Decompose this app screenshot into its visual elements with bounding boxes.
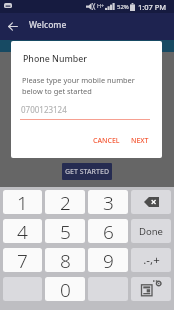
staticText: 9 bbox=[103, 248, 114, 272]
staticText: 8 bbox=[60, 248, 71, 272]
staticText: NEXT bbox=[131, 136, 149, 146]
staticText: 5 bbox=[60, 219, 71, 243]
staticText: CANCEL bbox=[93, 136, 120, 146]
button[interactable]: Backspace bbox=[131, 190, 171, 214]
button[interactable]: 9 bbox=[88, 248, 128, 272]
staticText: 7 bbox=[17, 248, 28, 272]
button[interactable]: CANCEL bbox=[90, 134, 123, 148]
button[interactable]: 8 bbox=[45, 248, 85, 272]
button[interactable]: 7 bbox=[3, 248, 42, 272]
staticText: 3 bbox=[103, 190, 114, 214]
staticText: GET STARTED bbox=[65, 167, 109, 177]
button[interactable]: Done bbox=[131, 219, 171, 243]
button[interactable]: 2 bbox=[45, 190, 85, 214]
button[interactable]: 6 bbox=[88, 219, 128, 243]
staticText: 2 bbox=[60, 190, 71, 214]
button[interactable]: .-,+ bbox=[131, 248, 171, 272]
staticText: 6 bbox=[103, 219, 114, 243]
staticText: 1:07 PM bbox=[138, 2, 167, 12]
staticText: 0700123124 bbox=[21, 104, 67, 115]
staticText: Please type your mobile number below to … bbox=[22, 75, 135, 97]
staticText: 1 bbox=[17, 190, 28, 214]
staticText: 0 bbox=[60, 277, 71, 301]
button[interactable]: Switch keyboard bbox=[131, 277, 171, 301]
button[interactable]: 3 bbox=[88, 190, 128, 214]
button[interactable]: 0 bbox=[45, 277, 85, 301]
button[interactable]: Back bbox=[0, 13, 25, 40]
staticText: 4 bbox=[17, 219, 28, 243]
staticText: Phone Number bbox=[23, 53, 88, 65]
button[interactable]: 1 bbox=[3, 190, 42, 214]
button[interactable]: 4 bbox=[3, 219, 42, 243]
staticText: Welcome bbox=[29, 19, 67, 31]
staticText: .-,+ bbox=[143, 252, 160, 268]
staticText: 52% bbox=[117, 3, 129, 11]
button[interactable]: 5 bbox=[45, 219, 85, 243]
button[interactable]: NEXT bbox=[128, 134, 152, 148]
staticText: Done bbox=[139, 225, 163, 238]
staticText: H+ bbox=[97, 2, 105, 9]
button[interactable]: GET STARTED bbox=[62, 163, 112, 180]
